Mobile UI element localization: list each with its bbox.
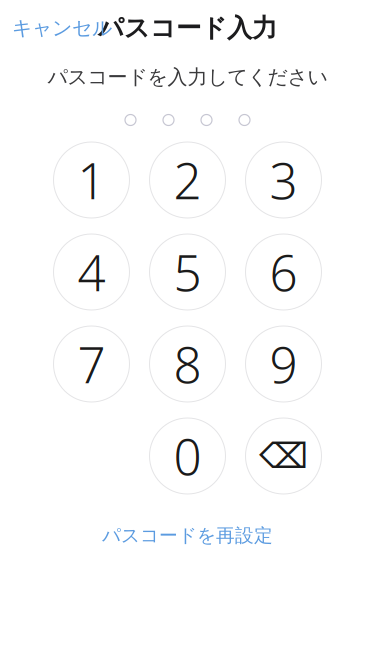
staticText: 8 <box>173 331 201 397</box>
staticText: パスコードを入力してください <box>47 65 327 89</box>
button[interactable]: キャンセル <box>0 4 124 52</box>
staticText: 2 <box>173 147 201 213</box>
button[interactable]: 7 <box>53 326 129 402</box>
button[interactable]: 9 <box>245 326 321 402</box>
button[interactable]: 8 <box>149 326 225 402</box>
staticText: キャンセル <box>12 16 112 40</box>
button[interactable]: 削除 <box>245 418 321 494</box>
staticText: 7 <box>77 331 105 397</box>
staticText: ⌫ <box>259 436 308 476</box>
button[interactable]: 2 <box>149 142 225 218</box>
staticText: パスコードを再設定 <box>102 524 273 547</box>
staticText: 3 <box>269 147 297 213</box>
staticText: 9 <box>269 331 297 397</box>
staticText: 4 <box>77 239 105 305</box>
button[interactable]: 1 <box>53 142 129 218</box>
button[interactable]: パスコードを再設定 <box>86 514 289 557</box>
button[interactable]: 3 <box>245 142 321 218</box>
button[interactable]: 4 <box>53 234 129 310</box>
staticText: 5 <box>173 239 201 305</box>
staticText: パスコード入力 <box>98 12 277 43</box>
button[interactable]: 5 <box>149 234 225 310</box>
staticText: 0 <box>173 423 201 489</box>
staticText: 1 <box>77 147 105 213</box>
staticText: 6 <box>269 239 297 305</box>
button[interactable]: 6 <box>245 234 321 310</box>
button[interactable]: 0 <box>149 418 225 494</box>
